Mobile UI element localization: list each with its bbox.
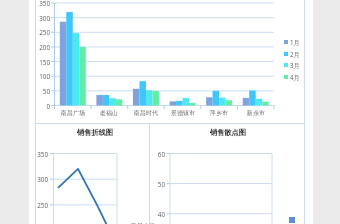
staticText: 销售散点图 — [200, 128, 256, 137]
button[interactable]: 1月 — [284, 37, 300, 47]
button[interactable]: 销售散点图 — [200, 128, 256, 138]
staticText: 南昌广场 — [125, 222, 161, 224]
staticText: 150 — [28, 58, 50, 67]
button[interactable]: 2月 — [284, 49, 300, 59]
staticText: 40 — [143, 210, 165, 219]
staticText: 300 — [26, 175, 48, 184]
staticText: 4月 — [290, 73, 300, 81]
staticText: 0 — [28, 102, 50, 111]
staticText: 景德镇市 — [163, 109, 203, 117]
staticText: 销售折线图 — [67, 128, 123, 137]
staticText: 1月 — [290, 38, 300, 46]
staticText: 南昌时代 — [126, 109, 166, 117]
staticText: 2月 — [290, 50, 300, 58]
staticText: 新余市 — [236, 109, 276, 117]
staticText: 南昌广场 — [53, 109, 93, 117]
staticText: 老福山 — [89, 109, 129, 117]
button[interactable]: 销售折线图 — [67, 128, 123, 138]
button[interactable]: 销售柱形图 — [55, 3, 275, 106]
button[interactable]: 销售散点图 — [170, 154, 272, 224]
staticText: 萍乡市 — [199, 109, 239, 117]
staticText: 50 — [143, 180, 165, 189]
staticText: 3月 — [290, 61, 300, 69]
staticText: 250 — [26, 201, 48, 210]
staticText: 100 — [28, 72, 50, 81]
staticText: 300 — [28, 14, 50, 23]
staticText: 200 — [28, 43, 50, 52]
staticText: 60 — [143, 150, 165, 159]
button[interactable]: 销售折线图 — [54, 154, 118, 224]
button[interactable]: 4月 — [284, 72, 300, 82]
staticText: 350 — [28, 0, 50, 8]
staticText: 350 — [26, 150, 48, 159]
staticText: 50 — [28, 87, 50, 96]
staticText: 250 — [28, 28, 50, 37]
button[interactable]: 3月 — [284, 60, 300, 70]
